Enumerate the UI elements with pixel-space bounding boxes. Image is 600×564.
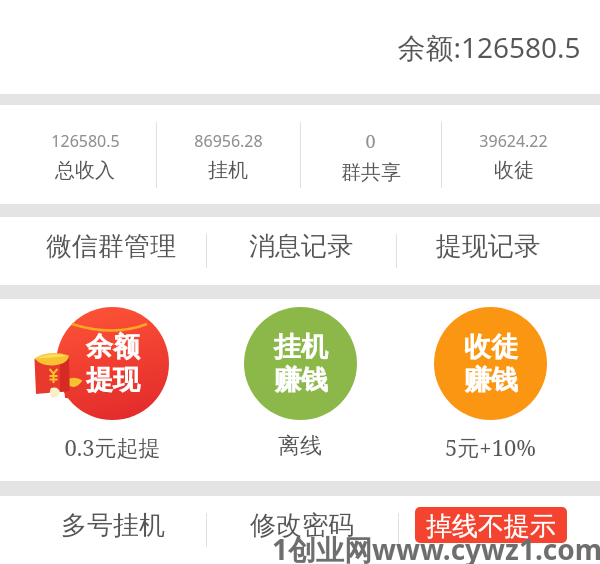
staticText: 离线 [278, 432, 322, 460]
button[interactable]: 掉线不提示 [415, 507, 567, 543]
staticText: 收徒 赚钱 [464, 330, 518, 397]
staticText: 修改密码 [250, 509, 354, 542]
button[interactable]: 86956.28 [156, 105, 300, 204]
button[interactable]: 修改密码 [206, 496, 398, 564]
button[interactable]: 提现记录 [396, 217, 580, 285]
staticText: 86956.28 [194, 130, 263, 152]
staticText: 0.3元起提 [64, 432, 161, 462]
staticText: 提现记录 [436, 230, 540, 263]
button[interactable]: 多号挂机 [20, 496, 206, 564]
staticText: 总收入 [55, 158, 115, 183]
staticText: 掉线不提示 [426, 510, 556, 543]
button[interactable]: 126580.5 [14, 105, 156, 204]
staticText: 余额 提现 [86, 330, 140, 397]
staticText: 挂机 赚钱 [274, 330, 328, 397]
staticText: 多号挂机 [61, 509, 165, 542]
staticText: 5元+10% [445, 432, 536, 462]
button[interactable]: 挂机 赚钱 [230, 299, 370, 481]
button[interactable]: 微信群管理 [16, 217, 206, 285]
button[interactable]: 余额 提现 [42, 299, 182, 481]
staticText: 收徒 [494, 158, 534, 183]
staticText: 消息记录 [249, 230, 353, 263]
button[interactable]: 0 [300, 105, 441, 204]
staticText: 126580.5 [51, 130, 120, 152]
staticText: 余额:126580.5 [397, 28, 581, 66]
staticText: 挂机 [208, 158, 248, 183]
staticText: 39624.22 [479, 130, 548, 152]
other: 红包 [34, 353, 84, 401]
staticText: 0 [365, 129, 376, 154]
button[interactable]: 收徒 赚钱 [420, 299, 560, 481]
staticText: 群共享 [341, 160, 401, 185]
staticText: 1创业网www.cywz1.com [272, 530, 600, 564]
button[interactable]: 消息记录 [206, 217, 396, 285]
button[interactable]: 39624.22 [441, 105, 586, 204]
staticText: 微信群管理 [46, 230, 176, 263]
